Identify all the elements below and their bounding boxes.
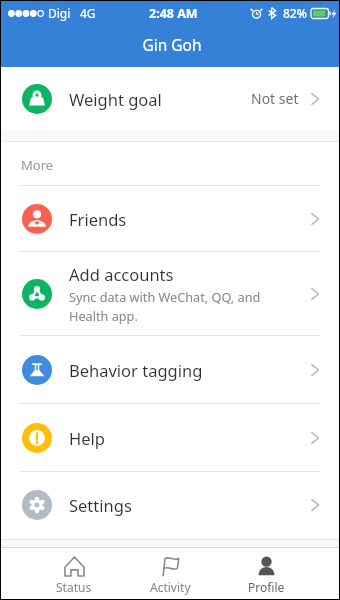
staticText: Activity [150, 579, 191, 595]
staticText: Weight goal [69, 88, 162, 110]
button[interactable]: Weight goal [1, 67, 339, 130]
staticText: 82% [283, 5, 307, 21]
staticText: Add accounts [69, 263, 174, 285]
staticText: Help [69, 427, 105, 449]
button[interactable]: Status [26, 548, 122, 599]
button[interactable]: Behavior tagging [1, 336, 339, 403]
staticText: More [21, 156, 54, 174]
button[interactable]: Add accounts [1, 252, 339, 335]
staticText: Friends [69, 208, 127, 230]
button[interactable]: Profile [218, 548, 314, 599]
button[interactable]: Settings [1, 472, 339, 537]
staticText: 2:48 AM [149, 5, 198, 22]
button[interactable]: Help [1, 404, 339, 471]
staticText: Status [56, 579, 92, 595]
staticText: Profile [248, 579, 285, 595]
staticText: Sync data with WeChat, QQ, and Health ap… [69, 288, 261, 325]
staticText: Not set [251, 89, 299, 108]
staticText: Settings [69, 494, 132, 516]
button[interactable]: Friends [1, 186, 339, 251]
button[interactable]: Activity [122, 548, 218, 599]
staticText: Behavior tagging [69, 359, 203, 381]
staticText: Digi [48, 5, 71, 21]
staticText: Gin Goh [3, 34, 340, 55]
staticText: 4G [80, 5, 96, 21]
